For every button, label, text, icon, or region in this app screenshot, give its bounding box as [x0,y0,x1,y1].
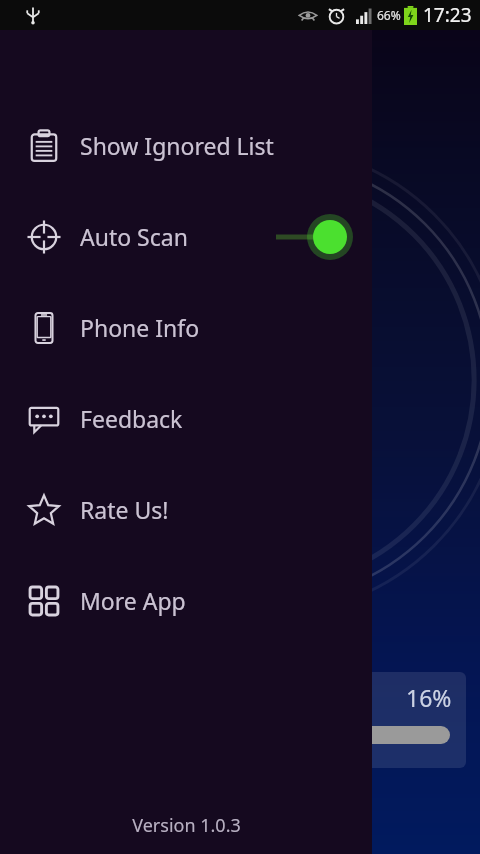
staticText: Rate Us! [80,494,169,525]
button[interactable]: More App [0,555,372,646]
button[interactable]: Rate Us! [0,464,372,555]
staticText: More App [80,585,186,616]
staticText: Version 1.0.3 [132,813,241,838]
button[interactable]: Auto Scan [0,191,372,282]
staticText: 16% [406,682,452,713]
staticText: No threats [268,580,373,609]
staticText: 17:23 [423,2,472,28]
staticText: Show Ignored List [80,130,274,161]
button[interactable]: Show Ignored List [0,100,372,191]
button[interactable]: Feedback [0,373,372,464]
staticText: Phone Info [80,312,200,343]
button[interactable]: Auto Scan toggle [270,217,352,257]
staticText: 66% [377,7,401,23]
button[interactable]: Phone Info [0,282,372,373]
staticText: Auto Scan [80,221,188,252]
staticText: Feedback [80,403,183,434]
